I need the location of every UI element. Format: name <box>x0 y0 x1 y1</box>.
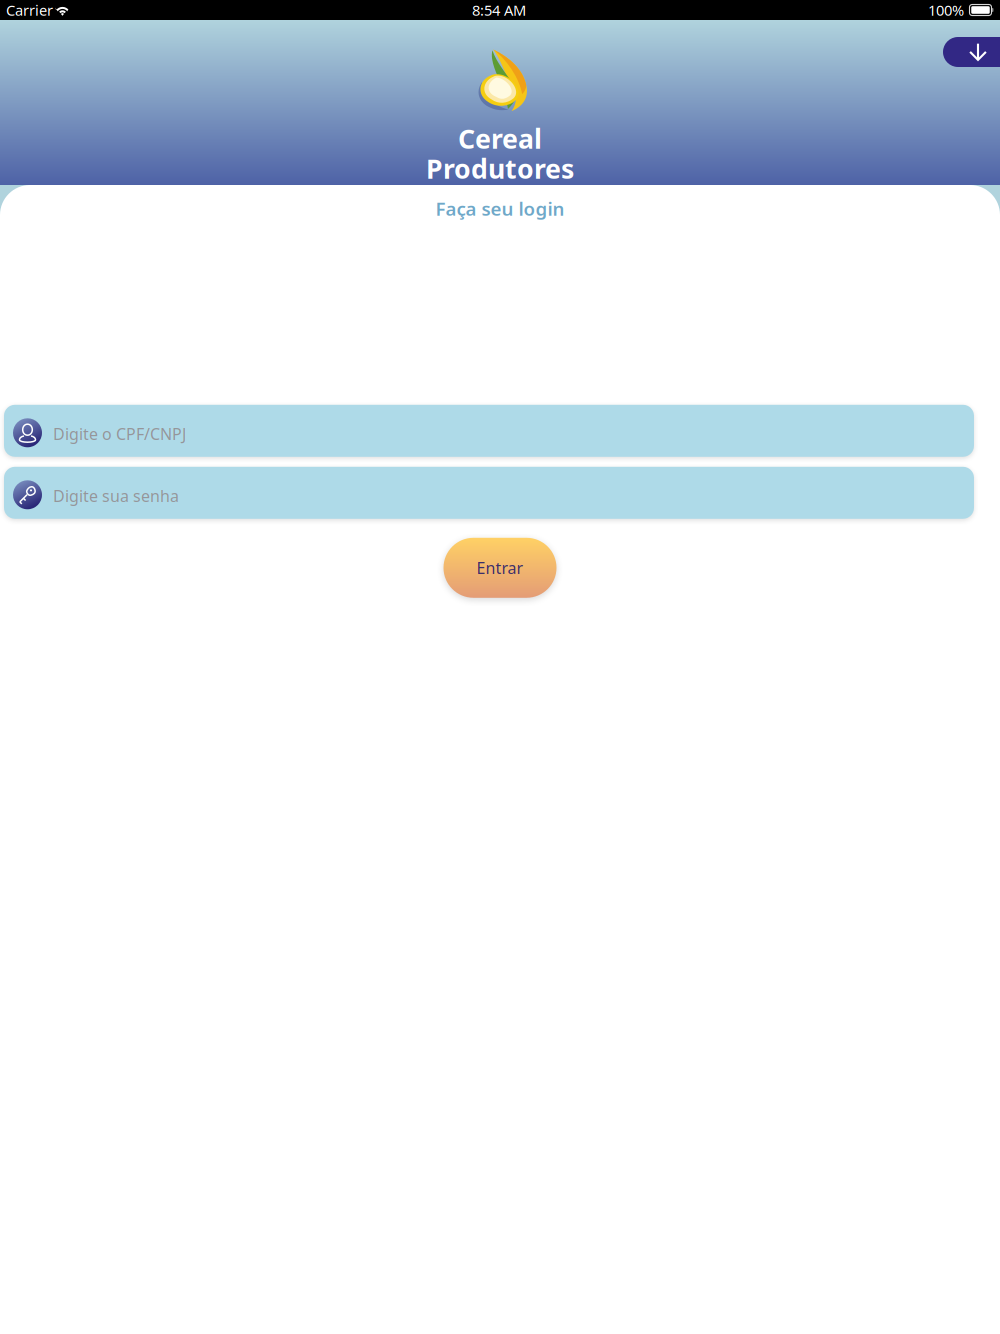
staticText: Digite sua senha <box>53 485 179 506</box>
button[interactable]: Entrar <box>443 538 556 598</box>
staticText: 100% <box>928 0 964 20</box>
staticText: Cereal <box>458 121 542 156</box>
staticText: Produtores <box>426 151 574 186</box>
staticText: Carrier <box>6 0 53 20</box>
staticText: Entrar <box>476 557 523 578</box>
staticText: Digite o CPF/CNPJ <box>53 423 186 444</box>
button[interactable]: Digite sua senha <box>4 467 974 519</box>
staticText: Faça seu login <box>435 196 564 221</box>
button[interactable]: Download <box>943 37 1000 67</box>
staticText: 8:54 AM <box>472 0 526 20</box>
button[interactable]: Digite o CPF/CNPJ <box>4 405 974 457</box>
